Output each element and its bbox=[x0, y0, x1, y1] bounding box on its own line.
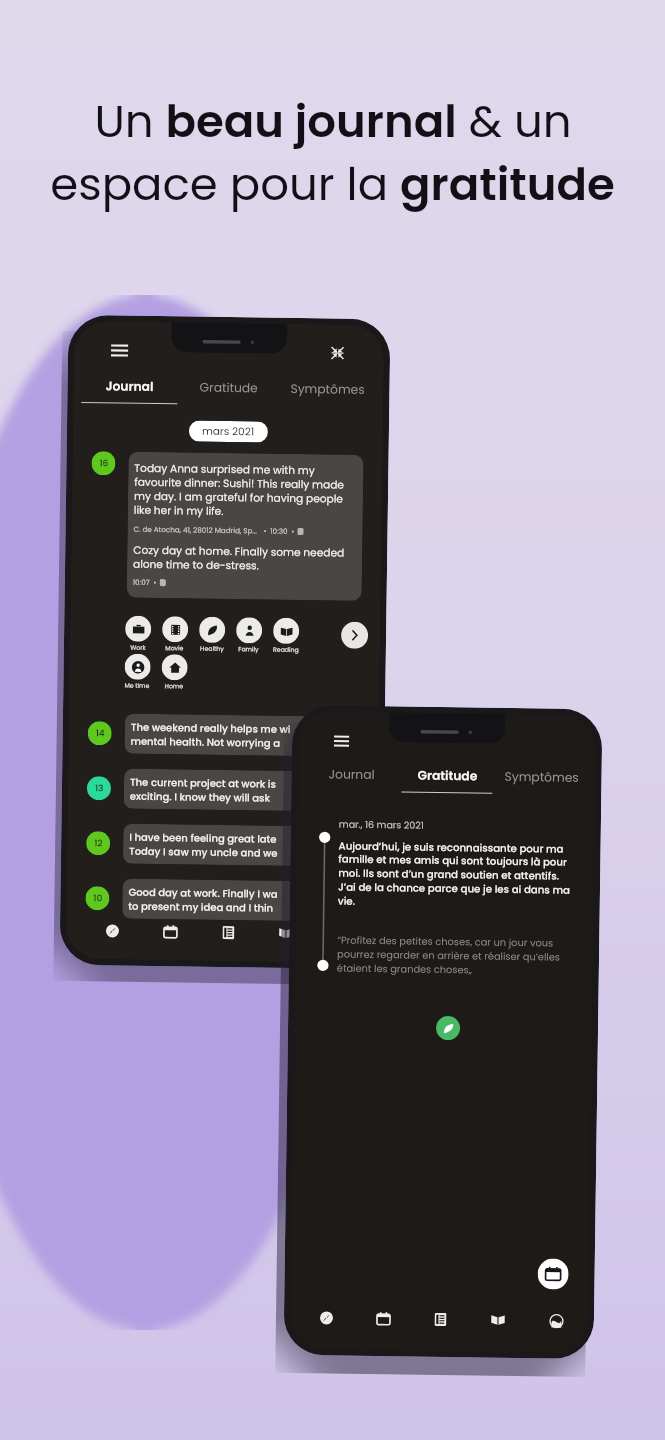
button[interactable]: 10 bbox=[85, 886, 109, 910]
staticText: • 10:30 • bbox=[263, 525, 295, 536]
staticText: Reading bbox=[273, 645, 299, 654]
button[interactable]: Leaf bbox=[436, 1016, 460, 1040]
staticText: Today I saw my uncle and we bbox=[129, 844, 278, 860]
staticText: Me time bbox=[124, 681, 149, 690]
staticText: mars 2021 bbox=[202, 424, 255, 439]
button[interactable]: Symptômes bbox=[494, 768, 590, 795]
staticText: Symptômes bbox=[290, 380, 366, 398]
staticText: Cozy day at home. Finally some needed al… bbox=[133, 543, 356, 575]
staticText: Movie bbox=[165, 643, 184, 652]
button[interactable]: Work bbox=[119, 615, 156, 652]
button[interactable]: Calendar bbox=[373, 1308, 393, 1328]
staticText: 12 bbox=[94, 837, 103, 850]
button[interactable]: Today Anna surprised me with my favourit… bbox=[127, 452, 364, 601]
button[interactable]: The current project at work is bbox=[124, 769, 378, 812]
button[interactable]: Add entry bbox=[537, 1258, 569, 1290]
staticText: Journal bbox=[328, 765, 376, 783]
button[interactable]: Gratitude bbox=[399, 766, 495, 794]
staticText: Family bbox=[238, 644, 259, 653]
staticText: Healthy bbox=[200, 644, 224, 653]
button[interactable]: The weekend really helps me wi bbox=[124, 714, 379, 757]
staticText: 13 bbox=[95, 782, 104, 795]
button[interactable]: Movie bbox=[156, 616, 193, 652]
button[interactable]: Book bbox=[488, 1310, 508, 1330]
button[interactable]: Journal bbox=[303, 765, 400, 792]
button[interactable]: 13 bbox=[87, 776, 111, 800]
button[interactable]: Healthy bbox=[193, 617, 230, 653]
button[interactable]: Explore bbox=[316, 1307, 336, 1328]
button[interactable]: Good day at work. Finally I wa bbox=[122, 879, 377, 922]
button[interactable]: 16 bbox=[91, 451, 116, 475]
staticText: Gratitude bbox=[417, 767, 478, 784]
other: Collapse bbox=[331, 346, 344, 360]
button[interactable]: Gratitude bbox=[179, 378, 279, 406]
staticText: The current project at work is bbox=[130, 775, 276, 791]
button[interactable]: Notes bbox=[430, 1309, 450, 1329]
staticText: Home bbox=[164, 681, 183, 690]
button[interactable]: 14 bbox=[87, 721, 112, 745]
button[interactable]: Explore bbox=[102, 920, 122, 941]
staticText: 14 bbox=[96, 727, 105, 740]
button[interactable]: I have been feeling great late bbox=[123, 824, 377, 867]
staticText: “Profitez des petites choses, car un jou… bbox=[337, 933, 569, 978]
button[interactable]: Reading bbox=[267, 618, 304, 654]
staticText: Today Anna surprised me with my favourit… bbox=[134, 461, 357, 521]
button[interactable]: More tags bbox=[341, 622, 368, 649]
button[interactable]: 12 bbox=[86, 831, 110, 855]
staticText: exciting. I know they will ask bbox=[130, 789, 273, 805]
button[interactable]: Home bbox=[155, 654, 193, 690]
button[interactable]: Mood bbox=[334, 924, 354, 944]
button[interactable]: Book bbox=[276, 923, 296, 943]
other: Menu bbox=[334, 735, 349, 747]
staticText: Un beau journal & un bbox=[94, 90, 572, 153]
staticText: 10 bbox=[93, 892, 102, 905]
staticText: mental health. Not worrying a bbox=[130, 734, 281, 750]
button[interactable]: mars 2021 bbox=[189, 420, 268, 443]
staticText: The weekend really helps me wi bbox=[131, 720, 291, 736]
staticText: Aujourd’hui, je suis reconnaissante pour… bbox=[338, 838, 571, 911]
staticText: 10:07 • bbox=[133, 577, 157, 587]
staticText: C. de Atocha, 41, 28012 Madrid, Sp... bbox=[133, 524, 258, 535]
button[interactable]: Family bbox=[230, 617, 267, 654]
staticText: to present my idea and I thin bbox=[128, 899, 273, 915]
staticText: Journal bbox=[105, 377, 154, 395]
staticText: Work bbox=[130, 643, 146, 652]
staticText: espace pour la gratitude bbox=[50, 153, 615, 216]
button[interactable]: Mood bbox=[546, 1310, 566, 1331]
staticText: 16 bbox=[99, 457, 109, 470]
button[interactable]: Notes bbox=[218, 922, 238, 942]
staticText: Gratitude bbox=[199, 379, 259, 396]
other: Menu bbox=[111, 344, 128, 357]
button[interactable]: Calendar bbox=[160, 921, 180, 941]
button[interactable]: Me time bbox=[118, 653, 156, 690]
staticText: I have been feeling great late bbox=[129, 830, 277, 846]
button[interactable]: Journal bbox=[79, 377, 180, 404]
staticText: Symptômes bbox=[504, 768, 580, 786]
staticText: mar., 16 mars 2021 bbox=[339, 817, 424, 832]
staticText: Good day at work. Finally I wa bbox=[128, 885, 278, 901]
button[interactable]: Symptômes bbox=[278, 380, 378, 407]
